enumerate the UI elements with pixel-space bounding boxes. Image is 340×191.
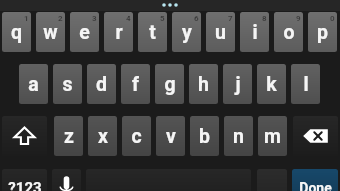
staticText: v bbox=[166, 125, 176, 148]
staticText: z bbox=[64, 125, 74, 148]
staticText: j bbox=[235, 73, 241, 96]
button[interactable]: Backspace bbox=[293, 116, 338, 156]
staticText: f bbox=[132, 73, 139, 96]
staticText: m bbox=[264, 125, 281, 148]
staticText: e bbox=[79, 21, 90, 44]
staticText: t bbox=[149, 21, 156, 44]
staticText: 6 bbox=[194, 14, 199, 23]
staticText: b bbox=[199, 125, 210, 148]
button[interactable]: h bbox=[189, 64, 218, 104]
staticText: r bbox=[115, 21, 123, 44]
button[interactable]: f bbox=[121, 64, 150, 104]
staticText: q bbox=[11, 21, 22, 44]
button[interactable]: Voice input bbox=[52, 169, 81, 191]
staticText: h bbox=[198, 73, 209, 96]
staticText: p bbox=[317, 21, 328, 44]
staticText: c bbox=[131, 125, 142, 148]
staticText: u bbox=[215, 21, 226, 44]
staticText: y bbox=[182, 21, 192, 44]
staticText: g bbox=[164, 73, 176, 96]
staticText: n bbox=[233, 125, 244, 148]
button[interactable]: 4 bbox=[104, 12, 133, 52]
staticText: i bbox=[252, 21, 258, 44]
button[interactable]: 2 bbox=[36, 12, 65, 52]
button[interactable]: j bbox=[223, 64, 252, 104]
staticText: 4 bbox=[126, 14, 131, 23]
button[interactable]: b bbox=[190, 116, 219, 156]
button[interactable]: m bbox=[258, 116, 287, 156]
button[interactable]: 5 bbox=[138, 12, 167, 52]
staticText: 5 bbox=[160, 14, 165, 23]
button[interactable]: a bbox=[19, 64, 48, 104]
button[interactable]: d bbox=[87, 64, 116, 104]
button[interactable]: s bbox=[53, 64, 82, 104]
button[interactable]: Done bbox=[292, 169, 338, 191]
staticText: 1 bbox=[24, 14, 29, 23]
button[interactable]: ?123 bbox=[2, 169, 47, 191]
staticText: w bbox=[43, 21, 58, 44]
button[interactable]: x bbox=[88, 116, 117, 156]
button[interactable]: 9 bbox=[274, 12, 303, 52]
staticText: Done bbox=[299, 180, 332, 191]
staticText: x bbox=[98, 125, 108, 148]
staticText: 8 bbox=[262, 14, 267, 23]
staticText: s bbox=[62, 73, 73, 96]
button[interactable]: l bbox=[291, 64, 320, 104]
staticText: 0 bbox=[330, 14, 335, 23]
button[interactable]: 0 bbox=[308, 12, 337, 52]
staticText: 7 bbox=[228, 14, 233, 23]
staticText: a bbox=[28, 73, 39, 96]
button[interactable]: c bbox=[122, 116, 151, 156]
button[interactable]: 7 bbox=[206, 12, 235, 52]
staticText: 9 bbox=[296, 14, 301, 23]
button[interactable]: 3 bbox=[70, 12, 99, 52]
button[interactable]: 6 bbox=[172, 12, 201, 52]
staticText: l bbox=[303, 73, 309, 96]
button[interactable]: n bbox=[224, 116, 253, 156]
staticText: 2 bbox=[58, 14, 63, 23]
button[interactable]: z bbox=[54, 116, 83, 156]
staticText: o bbox=[283, 21, 295, 44]
button[interactable]: 1 bbox=[2, 12, 31, 52]
staticText: k bbox=[266, 73, 277, 96]
staticText: 3 bbox=[92, 14, 97, 23]
button[interactable]: 8 bbox=[240, 12, 269, 52]
button[interactable]: Shift bbox=[2, 116, 47, 156]
button[interactable]: g bbox=[155, 64, 184, 104]
staticText: d bbox=[96, 73, 107, 96]
staticText: ?123 bbox=[8, 179, 42, 191]
button[interactable]: v bbox=[156, 116, 185, 156]
button[interactable]: k bbox=[257, 64, 286, 104]
